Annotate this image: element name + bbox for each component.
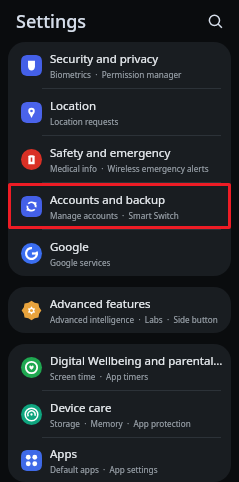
button[interactable]: Advanced features — [8, 287, 231, 333]
staticText: Settings — [16, 9, 87, 34]
staticText: Advanced intelligence · Labs · Side butt… — [50, 314, 218, 325]
staticText: Safety and emergency — [50, 145, 171, 161]
button[interactable]: Safety and emergency — [8, 136, 231, 182]
staticText: Google — [50, 239, 89, 255]
staticText: Location requests — [50, 116, 119, 127]
button[interactable]: Google — [8, 230, 231, 276]
button[interactable]: Security and privacy — [8, 42, 231, 88]
staticText: Biometrics · Permission manager — [50, 69, 182, 80]
staticText: Manage accounts · Smart Switch — [50, 210, 179, 221]
staticText: Digital Wellbeing and parental controls — [50, 353, 223, 369]
button[interactable]: Search — [201, 7, 229, 35]
staticText: Medical info · Wireless emergency alerts — [50, 163, 209, 174]
button[interactable]: Location — [8, 89, 231, 135]
staticText: Default apps · App settings — [50, 464, 158, 475]
button[interactable]: Device care — [8, 391, 231, 437]
button[interactable]: Apps — [8, 438, 231, 482]
staticText: Location — [50, 98, 97, 114]
button[interactable]: Accounts and backup — [8, 183, 231, 229]
staticText: Google services — [50, 257, 111, 268]
staticText: Accounts and backup — [50, 192, 166, 208]
button[interactable]: Digital Wellbeing and parental controls — [8, 344, 231, 390]
staticText: Apps — [50, 446, 78, 462]
staticText: Advanced features — [50, 296, 151, 312]
staticText: Device care — [50, 400, 112, 416]
staticText: Screen time · App timers — [50, 371, 149, 382]
staticText: Storage · Memory · App protection — [50, 418, 191, 429]
staticText: Security and privacy — [50, 51, 159, 67]
